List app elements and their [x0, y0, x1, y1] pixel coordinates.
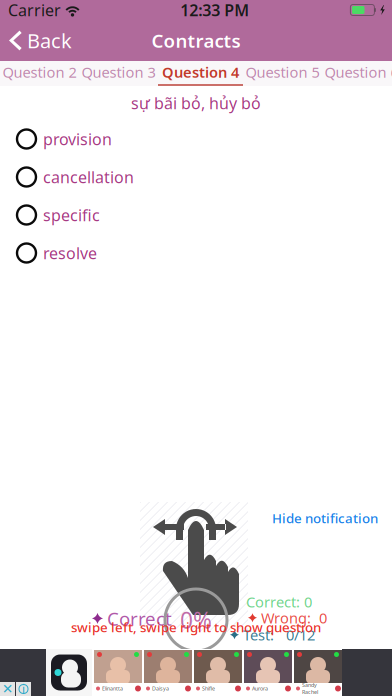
button[interactable]: Question 3 — [79, 61, 158, 86]
staticText: Wrong: 0 — [261, 608, 327, 627]
button[interactable]: Hide notification — [272, 509, 378, 527]
staticText: Question 5 — [245, 62, 319, 82]
button[interactable]: resolve — [0, 234, 392, 272]
staticText: provision — [43, 128, 112, 150]
staticText: Hide notification — [272, 509, 378, 527]
staticText: swipe left, swipe right to show question — [71, 618, 321, 636]
staticText: sự bãi bỏ, hủy bỏ — [131, 92, 261, 114]
staticText: Elinantta — [102, 685, 123, 692]
staticText: Aurora — [252, 685, 268, 692]
button[interactable]: Back — [0, 20, 80, 61]
staticText: i — [22, 681, 25, 696]
staticText: Correct — [107, 606, 172, 631]
staticText: Question 2 — [2, 62, 76, 82]
button[interactable]: Question 5 — [243, 61, 322, 86]
button[interactable]: provision — [0, 120, 392, 158]
button[interactable]: cancellation — [0, 158, 392, 196]
staticText: Shifle — [202, 685, 215, 692]
button[interactable]: ✕ — [0, 649, 392, 696]
staticText: Question 4 — [162, 62, 239, 82]
button[interactable]: Question 6 — [322, 61, 392, 86]
staticText: 0% — [180, 605, 212, 635]
button[interactable]: Question 2 — [0, 61, 79, 86]
button[interactable]: specific — [0, 196, 392, 234]
staticText: Daisya — [152, 685, 169, 692]
staticText: 12:33 PM — [180, 0, 249, 21]
button[interactable]: Question 4 — [158, 61, 243, 86]
staticText: Contracts — [151, 28, 240, 53]
staticText: cancellation — [43, 166, 134, 188]
staticText: Test: 0/12 — [243, 625, 315, 644]
staticText: Carrier — [8, 0, 61, 21]
staticText: specific — [43, 204, 100, 226]
staticText: ✕ — [2, 681, 13, 696]
staticText: Question 3 — [81, 62, 155, 82]
staticText: Correct: 0 — [246, 592, 312, 611]
staticText: Question 6 — [324, 62, 392, 82]
staticText: Back — [27, 27, 72, 54]
staticText: resolve — [43, 242, 97, 264]
staticText: Sandy Rachel — [302, 681, 318, 696]
